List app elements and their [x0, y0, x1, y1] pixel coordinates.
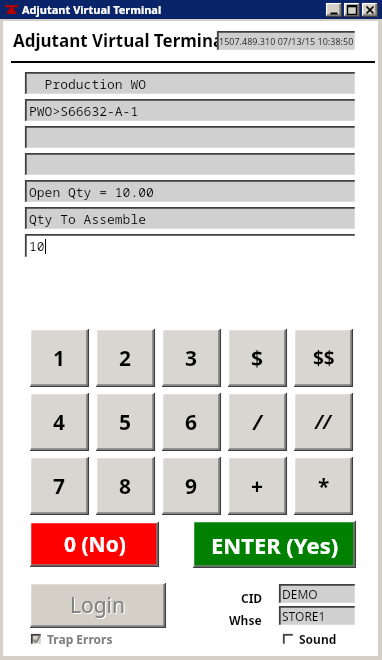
staticText: 10	[29, 237, 45, 255]
staticText: 4	[53, 408, 66, 437]
button[interactable]: 1	[30, 329, 89, 387]
staticText: $$	[313, 345, 335, 371]
staticText: ENTER (Yes)	[211, 530, 339, 560]
staticText: 1507.489.310 07/13/15 10:38:50	[219, 35, 354, 47]
staticText: 6	[185, 408, 198, 437]
button[interactable]: $$	[294, 329, 353, 387]
button[interactable]: $	[228, 329, 287, 387]
button[interactable]: 7	[30, 457, 89, 515]
staticText: 8	[119, 472, 132, 501]
button[interactable]: 9	[162, 457, 221, 515]
button[interactable]: +	[228, 457, 287, 515]
button[interactable]: Close	[362, 3, 378, 17]
button[interactable]: 8	[96, 457, 155, 515]
staticText: $	[251, 344, 264, 373]
staticText: *	[318, 472, 330, 501]
staticText: /	[253, 408, 262, 437]
staticText: Qty To Assemble	[29, 210, 147, 228]
staticText: 9	[185, 472, 198, 501]
staticText: 5	[119, 408, 132, 437]
button[interactable]: /	[228, 393, 287, 451]
button[interactable]: //	[294, 393, 353, 451]
staticText: Open Qty = 10.00	[29, 183, 154, 201]
staticText: Whse	[229, 612, 262, 628]
button[interactable]: 0 (No)	[30, 522, 159, 567]
staticText: PWO>S66632-A-1	[29, 102, 139, 120]
button[interactable]: Trap Errors	[29, 629, 115, 649]
staticText: 2	[119, 344, 132, 373]
staticText: Sound	[299, 631, 337, 647]
button[interactable]: Sound	[281, 629, 339, 649]
button[interactable]: 6	[162, 393, 221, 451]
button[interactable]: 5	[96, 393, 155, 451]
staticText: //	[315, 409, 332, 435]
staticText: Production WO	[29, 75, 147, 93]
button[interactable]: Login	[30, 583, 166, 628]
staticText: 1	[53, 344, 66, 373]
staticText: +	[251, 472, 264, 501]
staticText: STORE1	[282, 608, 326, 624]
button[interactable]: 4	[30, 393, 89, 451]
staticText: Login	[71, 592, 127, 621]
staticText: Adjutant Virtual Terminal	[13, 29, 229, 52]
button[interactable]: ENTER (Yes)	[193, 521, 356, 568]
staticText: 7	[53, 472, 66, 501]
button[interactable]: Maximize	[344, 3, 360, 17]
button[interactable]: 2	[96, 329, 155, 387]
staticText: 0 (No)	[64, 530, 126, 559]
button[interactable]: *	[294, 457, 353, 515]
staticText: Trap Errors	[47, 631, 113, 647]
staticText: DEMO	[282, 586, 318, 602]
button[interactable]: 3	[162, 329, 221, 387]
button[interactable]: Minimize	[326, 3, 342, 17]
staticText: Login	[70, 591, 126, 620]
staticText: Adjutant Virtual Terminal	[22, 2, 162, 17]
staticText: 3	[185, 344, 198, 373]
staticText: CID	[241, 590, 263, 606]
